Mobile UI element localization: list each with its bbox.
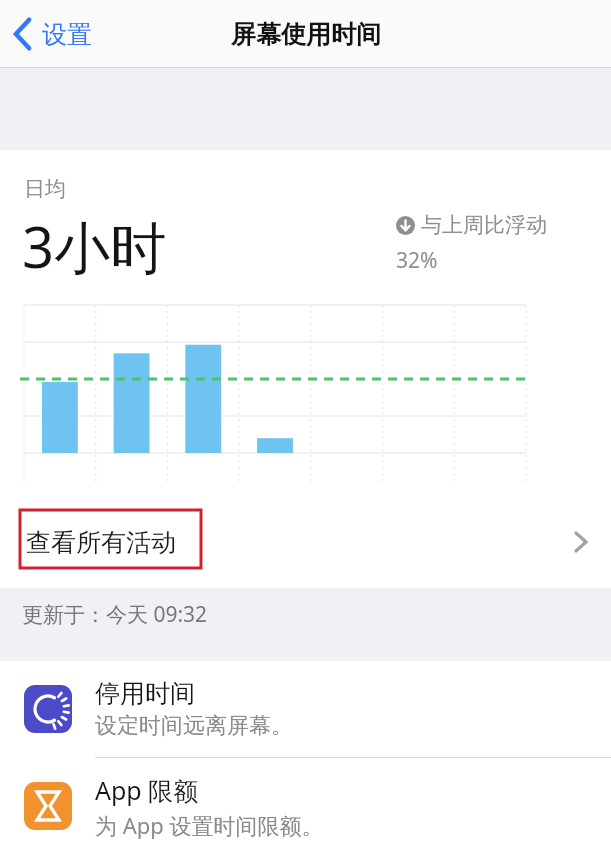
staticText: 3小时	[22, 208, 167, 284]
staticText: 为 App 设置时间限额。	[95, 810, 324, 840]
staticText: 与上周比浮动	[421, 212, 547, 238]
staticText: 32%	[396, 246, 438, 275]
staticText: 设定时间远离屏幕。	[95, 712, 293, 740]
staticText: 屏幕使用时间	[231, 19, 381, 50]
staticText: 更新于：今天 09:32	[22, 600, 208, 629]
staticText: 日均	[24, 176, 66, 202]
button[interactable]: 停用时间	[0, 661, 611, 757]
button[interactable]: 查看所有活动	[0, 510, 611, 574]
button[interactable]: App 限额	[0, 758, 611, 854]
staticText: 查看所有活动	[26, 527, 176, 558]
staticText: App 限额	[95, 773, 199, 807]
button[interactable]: 设置	[12, 17, 92, 51]
staticText: 停用时间	[95, 678, 195, 709]
staticText: 设置	[42, 19, 92, 50]
